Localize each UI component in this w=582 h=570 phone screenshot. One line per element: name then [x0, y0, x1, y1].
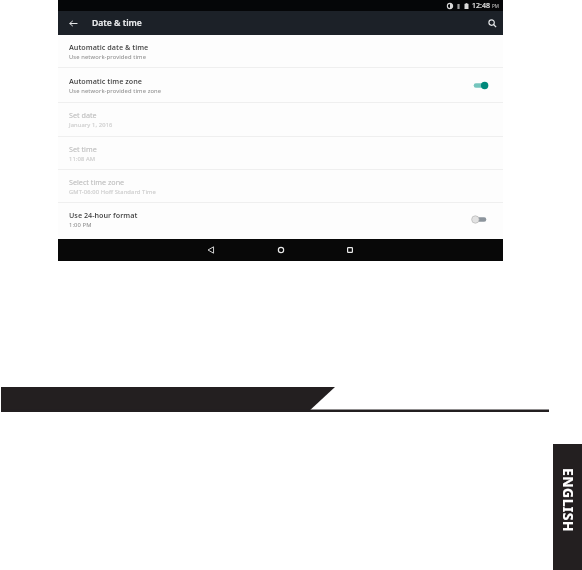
staticText: Set time [69, 144, 97, 154]
button[interactable]: Set time [58, 137, 503, 169]
button[interactable]: Automatic time zone [58, 68, 503, 102]
button[interactable]: Navigate up [63, 13, 83, 33]
button[interactable]: Automatic date & time [58, 35, 503, 67]
staticText: Automatic date & time [69, 42, 149, 52]
staticText: Use network-provided time [69, 53, 147, 61]
button[interactable]: Search [483, 14, 501, 32]
staticText: January 1, 2016 [69, 121, 113, 129]
staticText: GMT-06:00 Hoff Standard Time [69, 188, 157, 196]
staticText: 1:00 PM [69, 221, 92, 229]
staticText: Set date [69, 110, 97, 120]
staticText: Use network-provided time zone [69, 87, 162, 95]
button[interactable]: Home [271, 240, 291, 260]
staticText: Automatic time zone [69, 76, 142, 86]
button[interactable]: Select time zone [58, 170, 503, 202]
staticText: Use 24-hour format [69, 210, 138, 220]
button[interactable]: Recent apps [340, 240, 360, 260]
staticText: Select time zone [69, 177, 125, 187]
staticText: 11:08 AM [69, 155, 96, 163]
staticText: Date & time [92, 17, 142, 29]
staticText: PM [492, 3, 499, 9]
button[interactable]: ENGLISH section tab [553, 444, 582, 570]
staticText: 12:48 [472, 1, 490, 11]
button[interactable]: Use 24-hour format [58, 203, 503, 235]
button[interactable]: Back [201, 240, 221, 260]
button[interactable]: Set date [58, 103, 503, 136]
